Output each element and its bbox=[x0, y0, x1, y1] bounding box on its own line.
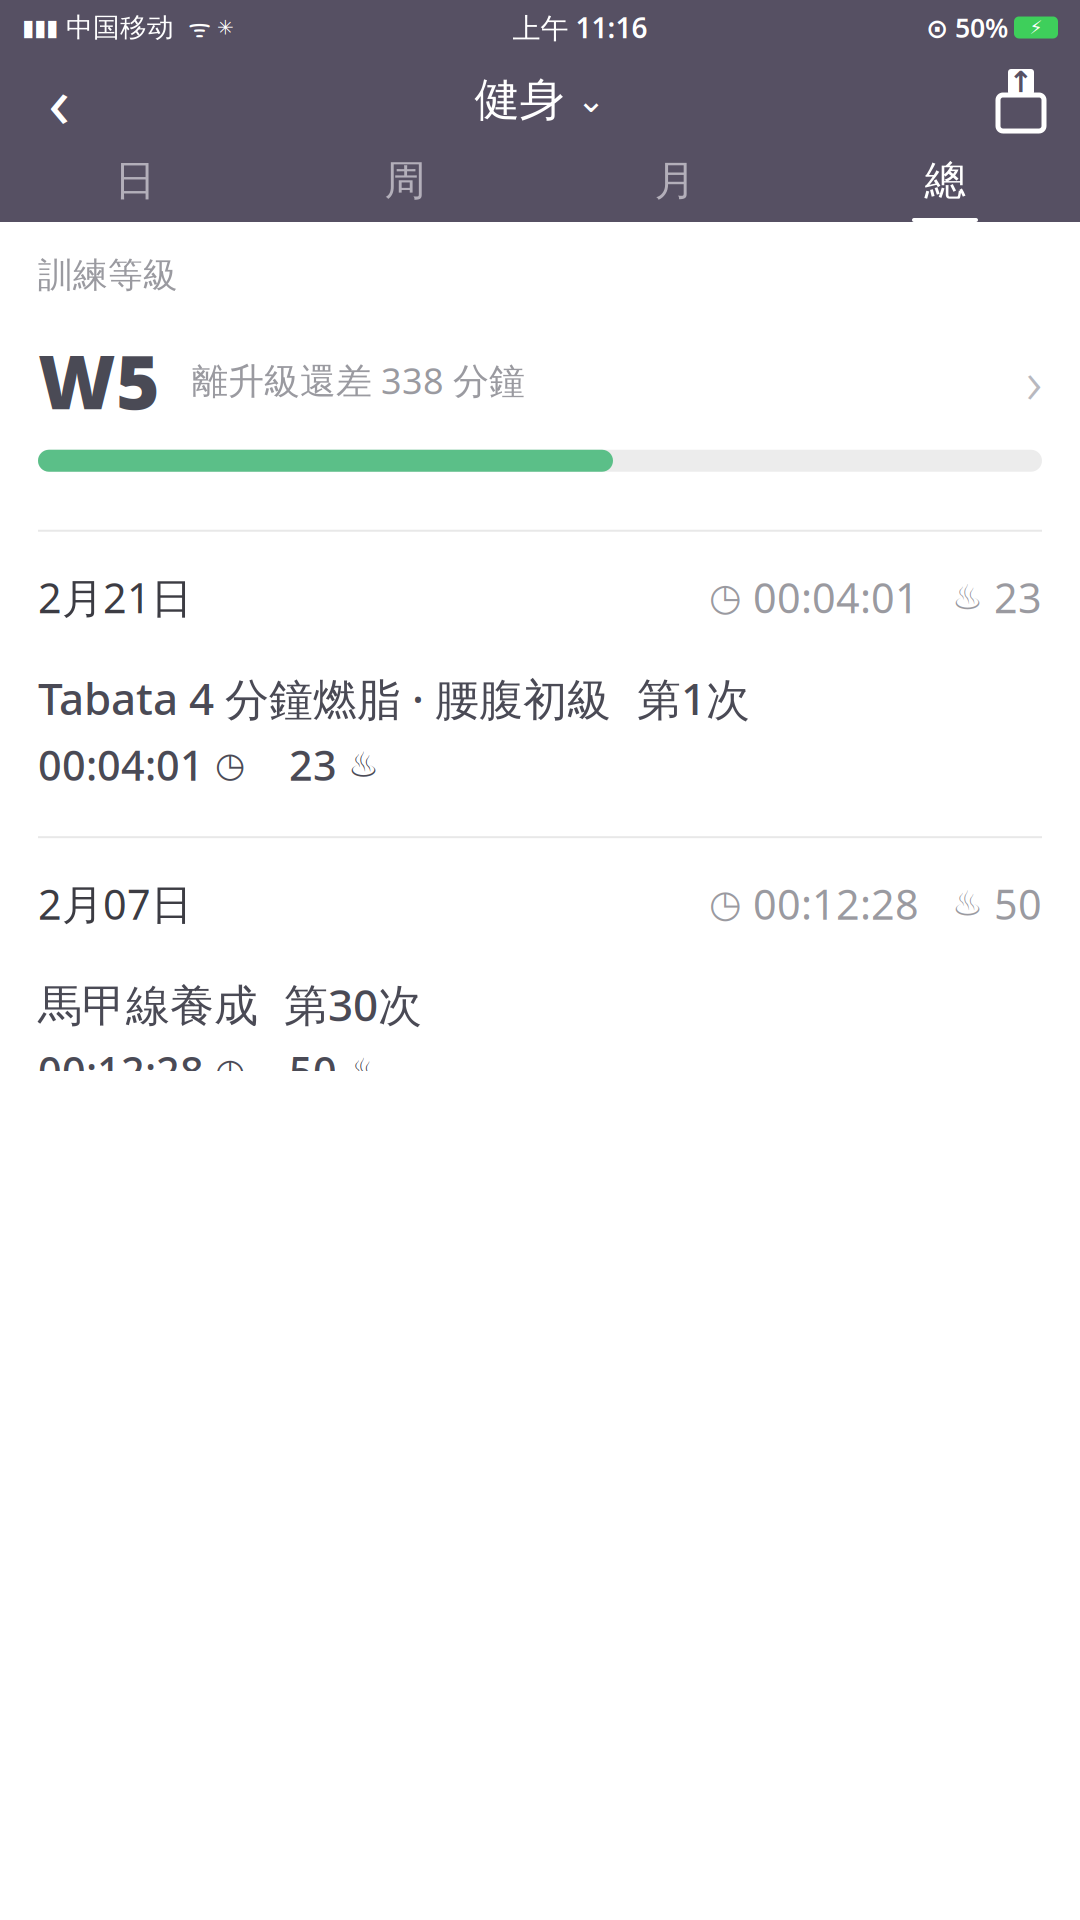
staticText: ᯤ bbox=[174, 11, 211, 44]
staticText: ♨ bbox=[919, 577, 983, 617]
staticText: ♨ bbox=[337, 745, 379, 784]
staticText: 23 bbox=[245, 737, 337, 792]
staticText: ◷ bbox=[709, 576, 742, 618]
staticText: 00:04:01 bbox=[38, 737, 204, 792]
staticText: ◷ bbox=[709, 882, 742, 925]
button[interactable]: 總 bbox=[810, 145, 1080, 222]
button[interactable]: Back bbox=[14, 55, 104, 145]
staticText: ⌄ bbox=[576, 80, 605, 120]
staticText: 日 bbox=[114, 155, 155, 206]
staticText: ◷ bbox=[204, 1051, 245, 1091]
staticText: 周 bbox=[384, 155, 425, 206]
staticText: 離升級還差 338 分鐘 bbox=[170, 356, 525, 404]
staticText: ♨ bbox=[337, 1051, 379, 1091]
button[interactable]: 月 bbox=[540, 145, 810, 222]
staticText: 50 bbox=[983, 876, 1042, 931]
button[interactable]: W5 bbox=[38, 297, 1042, 450]
staticText: ♨ bbox=[919, 884, 983, 923]
staticText: 00:12:28 bbox=[38, 1043, 204, 1098]
staticText: 2月21日 bbox=[38, 570, 192, 625]
staticText: ▮▮▮ bbox=[22, 15, 58, 40]
staticText: 健身 bbox=[474, 72, 564, 128]
staticText: W5 bbox=[38, 331, 160, 430]
staticText: ‹ bbox=[48, 52, 70, 148]
staticText: Tabata 4 分鐘燃脂 · 腰腹初級 第1次 bbox=[38, 669, 750, 727]
staticText: 50 bbox=[245, 1043, 337, 1098]
staticText: 00:04:01 bbox=[742, 570, 919, 625]
staticText: ⊙ 50% bbox=[926, 10, 1008, 45]
staticText: 2月07日 bbox=[38, 876, 192, 931]
staticText: 上午 11:16 bbox=[512, 9, 647, 46]
button[interactable]: 健身 bbox=[454, 58, 625, 142]
staticText: › bbox=[1026, 339, 1042, 421]
button[interactable]: 2月21日 bbox=[0, 530, 1080, 836]
staticText: 總 bbox=[924, 155, 965, 206]
staticText: 馬甲線養成 第30次 bbox=[38, 975, 422, 1033]
button[interactable]: 周 bbox=[270, 145, 540, 222]
staticText: ◷ bbox=[204, 745, 245, 784]
staticText: ✳ bbox=[211, 16, 234, 39]
button[interactable]: Share bbox=[976, 55, 1066, 145]
staticText: 中国移动 bbox=[58, 11, 174, 44]
staticText: ⚡︎ bbox=[1029, 17, 1042, 38]
staticText: 23 bbox=[983, 570, 1042, 625]
button[interactable]: 2月07日 bbox=[0, 836, 1080, 1142]
button[interactable]: 日 bbox=[0, 145, 270, 222]
staticText: 訓練等級 bbox=[38, 254, 178, 297]
staticText: ↑ bbox=[1008, 65, 1033, 99]
staticText: 00:12:28 bbox=[742, 876, 919, 931]
staticText: 月 bbox=[654, 155, 695, 206]
